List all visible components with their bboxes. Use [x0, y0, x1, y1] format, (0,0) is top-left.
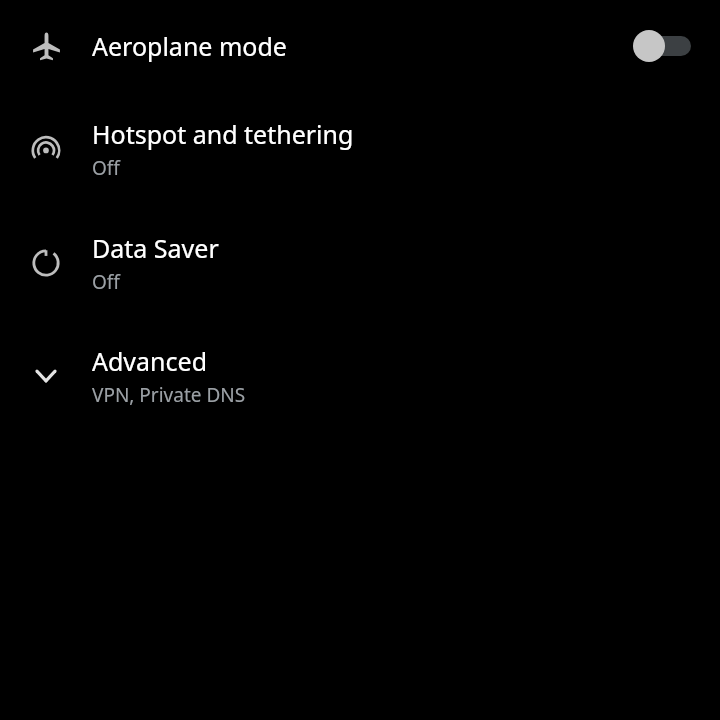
staticText: Data Saver — [92, 231, 219, 265]
button[interactable]: Aeroplane mode off — [633, 30, 691, 62]
staticText: Aeroplane mode — [92, 29, 287, 63]
staticText: Advanced — [92, 344, 208, 378]
button[interactable]: Data Saver — [0, 206, 720, 319]
other: Aeroplane mode — [31, 31, 62, 62]
button[interactable]: Expand advanced settings — [0, 319, 720, 432]
button[interactable]: Aeroplane mode — [0, 0, 720, 92]
button[interactable]: Hotspot and tethering — [0, 92, 720, 206]
staticText: VPN, Private DNS — [92, 382, 246, 408]
other: Hotspot and tethering — [29, 132, 63, 166]
other: Expand advanced settings — [29, 359, 63, 393]
other: Data Saver — [29, 246, 63, 280]
staticText: Off — [92, 269, 120, 295]
staticText: Hotspot and tethering — [92, 117, 354, 151]
staticText: Off — [92, 155, 120, 181]
